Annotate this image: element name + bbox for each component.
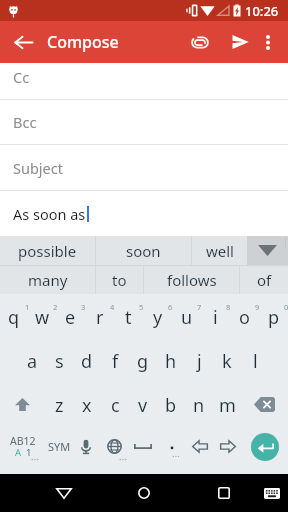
button[interactable]: 5 — [114, 294, 143, 339]
button[interactable]: 6 — [143, 294, 172, 339]
staticText: g — [137, 349, 149, 374]
button[interactable]: 4 — [85, 294, 114, 339]
staticText: AB12 — [10, 434, 36, 448]
button[interactable]: More options — [252, 26, 284, 58]
staticText: e — [65, 305, 76, 330]
button[interactable]: 9 — [230, 294, 259, 339]
staticText: q — [8, 305, 20, 330]
staticText: k — [222, 349, 232, 374]
button[interactable]: Change language — [100, 424, 128, 469]
staticText: d — [81, 349, 93, 374]
button[interactable]: 8 — [201, 294, 230, 339]
button[interactable]: g — [129, 339, 157, 384]
button[interactable]: Hide keyboard — [255, 476, 288, 510]
button[interactable]: d — [73, 339, 101, 384]
button[interactable]: Back — [45, 474, 83, 512]
staticText: t — [125, 305, 132, 330]
staticText: 3 — [81, 302, 86, 312]
staticText: 4 — [110, 302, 115, 312]
button[interactable]: Space — [128, 424, 158, 469]
staticText: j — [197, 349, 202, 374]
button[interactable]: Shift — [0, 384, 45, 429]
staticText: n — [193, 393, 205, 418]
staticText: r — [96, 305, 104, 330]
button[interactable]: follows — [144, 266, 239, 294]
staticText: to — [112, 270, 127, 290]
staticText: 7 — [197, 302, 202, 312]
button[interactable]: Attach file — [182, 24, 218, 60]
staticText: well — [206, 241, 234, 261]
button[interactable]: b — [157, 384, 185, 429]
button[interactable]: l — [241, 339, 269, 384]
staticText: l — [253, 349, 258, 374]
button[interactable] — [158, 424, 186, 469]
button[interactable]: 3 — [56, 294, 85, 339]
button[interactable]: 7 — [172, 294, 201, 339]
staticText: h — [165, 349, 177, 374]
staticText: w — [35, 305, 50, 330]
staticText: SYM — [48, 439, 71, 454]
staticText: Bcc — [13, 112, 37, 132]
staticText: p — [268, 305, 280, 330]
staticText: u — [181, 305, 193, 330]
staticText: 0 — [284, 302, 288, 312]
button[interactable]: Send — [222, 24, 258, 60]
button[interactable]: Voice input — [72, 424, 100, 469]
button[interactable]: Cc — [0, 63, 288, 99]
button[interactable]: 2 — [28, 294, 56, 339]
button[interactable]: to — [96, 266, 143, 294]
staticText: m — [219, 393, 236, 418]
button[interactable]: As soon as — [0, 191, 288, 236]
staticText: 8 — [226, 302, 231, 312]
button[interactable]: 0 — [259, 294, 288, 339]
staticText: A — [15, 446, 22, 459]
button[interactable]: Next — [214, 424, 242, 469]
button[interactable]: possible — [0, 236, 95, 265]
button[interactable]: 1 — [0, 294, 28, 339]
staticText: 9 — [255, 302, 260, 312]
button[interactable]: well — [192, 236, 247, 265]
staticText: y — [153, 305, 163, 330]
staticText: As soon as — [13, 204, 86, 224]
button[interactable]: v — [129, 384, 157, 429]
button[interactable]: x — [73, 384, 101, 429]
staticText: f — [112, 349, 119, 374]
button[interactable]: of — [240, 266, 288, 294]
button[interactable]: Bcc — [0, 100, 288, 144]
button[interactable]: More suggestions — [247, 236, 288, 265]
button[interactable]: Backspace — [241, 384, 288, 429]
button[interactable]: AB12 — [0, 424, 46, 469]
button[interactable]: Recent apps — [205, 474, 243, 512]
staticText: possible — [18, 241, 77, 261]
button[interactable]: SYM — [46, 424, 72, 469]
button[interactable]: n — [185, 384, 213, 429]
button[interactable]: m — [213, 384, 241, 429]
button[interactable]: k — [213, 339, 241, 384]
staticText: soon — [126, 241, 161, 261]
button[interactable]: j — [185, 339, 213, 384]
staticText: Cc — [13, 67, 30, 87]
button[interactable]: Back — [6, 25, 40, 59]
button[interactable]: s — [46, 339, 73, 384]
button[interactable]: Previous — [186, 424, 214, 469]
staticText: v — [138, 393, 148, 418]
button[interactable]: h — [157, 339, 185, 384]
button[interactable]: a — [19, 339, 46, 384]
staticText: 6 — [168, 302, 173, 312]
button[interactable]: Subject — [0, 145, 288, 190]
button[interactable]: f — [101, 339, 129, 384]
staticText: b — [165, 393, 177, 418]
button[interactable]: Enter — [242, 424, 288, 469]
button[interactable]: many — [0, 266, 95, 294]
staticText: s — [55, 349, 64, 374]
staticText: of — [257, 270, 272, 290]
staticText: i — [213, 305, 218, 330]
button[interactable]: z — [45, 384, 73, 429]
staticText: x — [82, 393, 92, 418]
staticText: z — [55, 393, 64, 418]
staticText: many — [28, 270, 68, 290]
button[interactable]: c — [101, 384, 129, 429]
button[interactable]: Home — [125, 474, 163, 512]
button[interactable]: soon — [96, 236, 191, 265]
staticText: 1 — [26, 446, 32, 459]
